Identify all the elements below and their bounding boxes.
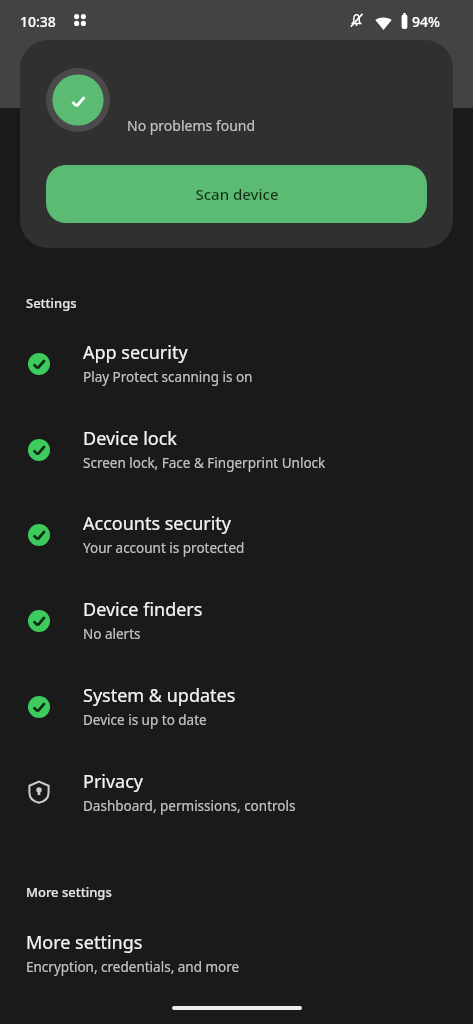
staticText: No alerts	[83, 625, 141, 643]
staticText: Dashboard, permissions, controls	[83, 797, 296, 815]
button[interactable]: Back	[12, 57, 56, 101]
staticText: Device is up to date	[83, 711, 207, 729]
button[interactable]: Scan device	[46, 165, 427, 223]
staticText: App security	[83, 340, 188, 365]
button[interactable]	[20, 40, 453, 248]
staticText: Privacy	[83, 769, 144, 794]
button[interactable]: Accounts security	[0, 503, 473, 581]
button[interactable]: Device lock	[0, 418, 473, 496]
button[interactable]: System & updates	[0, 675, 473, 753]
button[interactable]: App security	[0, 332, 473, 410]
staticText: Play Protect scanning is on	[83, 368, 253, 386]
staticText: Settings	[26, 294, 77, 312]
staticText: Accounts security	[83, 511, 232, 536]
staticText: Your account is protected	[83, 539, 245, 557]
button[interactable]: Device finders	[0, 589, 473, 667]
staticText: 94%	[412, 12, 440, 31]
staticText: Security & privacy	[88, 65, 264, 94]
staticText: Encryption, credentials, and more	[26, 958, 240, 976]
staticText: Scan device	[195, 184, 279, 204]
staticText: 10:38	[20, 12, 56, 31]
button[interactable]: More settings	[0, 920, 473, 992]
staticText: No problems found	[127, 116, 256, 135]
staticText: More settings	[26, 930, 143, 955]
staticText: System & updates	[83, 683, 236, 708]
button[interactable]: Privacy	[0, 761, 473, 839]
staticText: Screen lock, Face & Fingerprint Unlock	[83, 454, 326, 472]
staticText: Device lock	[83, 426, 177, 451]
staticText: Device finders	[83, 597, 203, 622]
staticText: More settings	[26, 883, 112, 901]
